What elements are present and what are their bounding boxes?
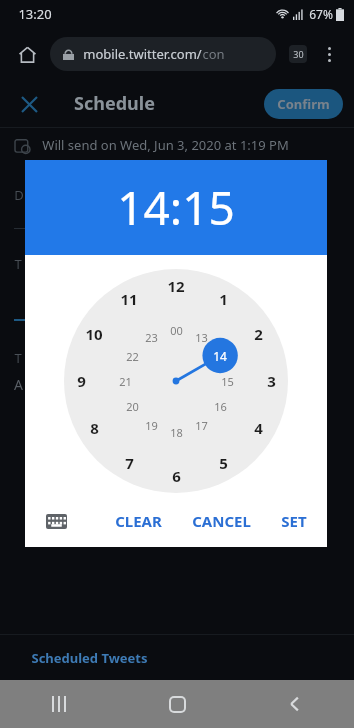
button[interactable]: Home: [118, 680, 236, 728]
staticText: 19: [145, 418, 158, 433]
staticText: 23: [145, 330, 158, 345]
staticText: T: [14, 255, 22, 273]
staticText: 18: [170, 425, 183, 440]
button[interactable]: Scheduled Tweets: [0, 635, 354, 680]
staticText: Will send on Wed, Jun 3, 2020 at 1:19 PM: [42, 136, 289, 154]
staticText: 13: [195, 330, 208, 345]
button[interactable]: mobile.twitter.com/: [50, 37, 276, 71]
staticText: 7: [125, 453, 134, 473]
staticText: 13:20: [18, 5, 52, 23]
button[interactable]: CLEAR: [111, 505, 166, 537]
staticText: 67%: [309, 6, 333, 22]
button[interactable]: Tabs: [282, 38, 314, 70]
staticText: 17: [195, 418, 208, 433]
staticText: 20: [126, 399, 139, 414]
staticText: A: [14, 375, 23, 394]
staticText: Scheduled Tweets: [31, 649, 148, 667]
staticText: CLEAR: [115, 511, 162, 531]
staticText: 2: [254, 324, 263, 344]
staticText: 4: [254, 418, 263, 438]
staticText: 16: [214, 399, 227, 414]
staticText: 12: [167, 276, 185, 296]
staticText: con: [202, 45, 225, 63]
button[interactable]: CANCEL: [188, 505, 255, 537]
staticText: SET: [281, 511, 307, 531]
staticText: mobile.twitter.com/: [83, 45, 202, 63]
staticText: Confirm: [277, 95, 330, 113]
staticText: 21: [119, 374, 132, 389]
button[interactable]: SET: [277, 505, 311, 537]
staticText: 11: [120, 289, 138, 309]
staticText: 1: [219, 289, 228, 309]
button[interactable]: Back: [236, 680, 354, 728]
staticText: 9: [77, 371, 86, 391]
staticText: 6: [172, 466, 181, 486]
button[interactable]: Switch to keyboard input: [41, 506, 71, 536]
staticText: 10: [85, 324, 103, 344]
button[interactable]: Recents: [0, 680, 118, 728]
staticText: 30: [293, 48, 304, 60]
staticText: CANCEL: [192, 511, 251, 531]
staticText: 15: [221, 374, 234, 389]
staticText: D: [14, 186, 24, 204]
staticText: 14:15: [117, 176, 235, 239]
button[interactable]: Home: [10, 37, 44, 71]
staticText: 8: [90, 418, 99, 438]
staticText: 00: [170, 323, 183, 338]
staticText: 14: [213, 348, 227, 364]
staticText: Schedule: [74, 91, 155, 116]
button[interactable]: Confirm: [264, 89, 343, 119]
button[interactable]: More options: [314, 39, 344, 69]
staticText: 5: [219, 453, 228, 473]
button[interactable]: Close: [12, 87, 46, 121]
staticText: 3: [267, 371, 276, 391]
staticText: 22: [126, 349, 139, 364]
staticText: T: [14, 349, 22, 367]
